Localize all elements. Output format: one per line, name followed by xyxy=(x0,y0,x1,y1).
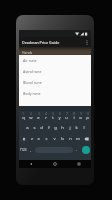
button[interactable]: 8 xyxy=(70,111,77,122)
staticText: f xyxy=(48,125,50,131)
staticText: p xyxy=(86,115,89,121)
button[interactable]: 9 xyxy=(77,111,84,122)
staticText: t xyxy=(52,115,54,121)
staticText: 3 xyxy=(38,112,40,116)
button[interactable]: h xyxy=(59,122,66,133)
staticText: 4 xyxy=(45,112,47,116)
button[interactable]: Back xyxy=(19,160,43,168)
staticText: k xyxy=(75,125,78,131)
button[interactable]: m xyxy=(74,133,82,144)
button[interactable]: Deadman Price Guide xyxy=(19,37,91,47)
button[interactable]: Astral rune xyxy=(19,66,91,77)
staticText: o xyxy=(79,115,82,121)
staticText: Deadman Price Guide xyxy=(22,40,60,45)
staticText: 0 xyxy=(87,112,89,116)
staticText: 7 xyxy=(66,112,68,116)
staticText: l xyxy=(83,125,85,131)
staticText: c xyxy=(45,136,48,142)
staticText: , xyxy=(30,147,32,152)
button[interactable]: g xyxy=(52,122,59,133)
staticText: h xyxy=(61,125,64,131)
staticText: ?123 xyxy=(20,148,27,152)
staticText: 1 xyxy=(22,112,24,116)
staticText: n xyxy=(69,136,72,142)
staticText: w xyxy=(29,115,33,121)
button[interactable]: 0 xyxy=(84,111,91,122)
button[interactable]: s xyxy=(31,122,38,133)
button[interactable]: j xyxy=(66,122,73,133)
staticText: m xyxy=(76,136,80,142)
button[interactable]: 4 xyxy=(42,111,49,122)
staticText: 5 xyxy=(52,112,54,116)
button[interactable]: More options xyxy=(83,38,91,46)
button[interactable]: Period xyxy=(74,144,80,155)
button[interactable]: Body rune xyxy=(19,88,91,99)
staticText: x xyxy=(37,136,40,142)
button[interactable]: 1 xyxy=(19,111,27,122)
staticText: . xyxy=(76,147,78,152)
staticText: q xyxy=(22,115,25,121)
button[interactable]: 5 xyxy=(49,111,56,122)
button[interactable]: x xyxy=(35,133,42,144)
other: Search xyxy=(82,146,90,154)
staticText: z xyxy=(31,136,33,142)
button[interactable]: d xyxy=(38,122,45,133)
staticText: 6 xyxy=(59,112,61,116)
staticText: 2 xyxy=(30,112,32,116)
staticText: r xyxy=(45,115,47,121)
button[interactable]: n xyxy=(66,133,74,144)
button[interactable]: Air rune xyxy=(19,55,91,66)
staticText: Air rune xyxy=(23,58,37,63)
staticText: Blood rune xyxy=(23,80,42,85)
button[interactable]: b xyxy=(58,133,66,144)
button[interactable]: 3 xyxy=(35,111,42,122)
button[interactable]: z xyxy=(28,133,35,144)
button[interactable]: 7 xyxy=(63,111,70,122)
button[interactable]: ?123 xyxy=(19,144,28,155)
staticText: g xyxy=(54,125,57,131)
staticText: e xyxy=(37,115,40,121)
staticText: Astral rune xyxy=(23,69,42,74)
staticText: d xyxy=(40,125,43,131)
button[interactable]: 6 xyxy=(56,111,63,122)
button[interactable]: k xyxy=(73,122,80,133)
button[interactable]: Recents xyxy=(67,160,91,168)
staticText: Hands xyxy=(22,50,33,55)
button[interactable]: f xyxy=(45,122,52,133)
staticText: s xyxy=(33,125,36,131)
button[interactable]: c xyxy=(42,133,50,144)
button[interactable]: v xyxy=(50,133,58,144)
button[interactable]: l xyxy=(80,122,87,133)
button[interactable]: a xyxy=(23,122,31,133)
button[interactable]: Blood rune xyxy=(19,77,91,88)
staticText: v xyxy=(53,136,56,142)
staticText: Body rune xyxy=(23,91,41,96)
staticText: 8 xyxy=(73,112,75,116)
staticText: u xyxy=(65,115,68,121)
button[interactable]: Backspace xyxy=(82,133,91,144)
button[interactable]: Comma xyxy=(28,144,34,155)
button[interactable]: Home xyxy=(43,160,67,168)
staticText: i xyxy=(73,115,75,121)
staticText: j xyxy=(69,125,71,131)
button[interactable]: 2 xyxy=(27,111,35,122)
button[interactable]: Shift xyxy=(19,133,28,144)
staticText: a xyxy=(26,125,29,131)
staticText: b xyxy=(61,136,64,142)
staticText: 9 xyxy=(80,112,82,116)
button[interactable]: Search xyxy=(80,144,91,155)
staticText: y xyxy=(58,115,61,121)
